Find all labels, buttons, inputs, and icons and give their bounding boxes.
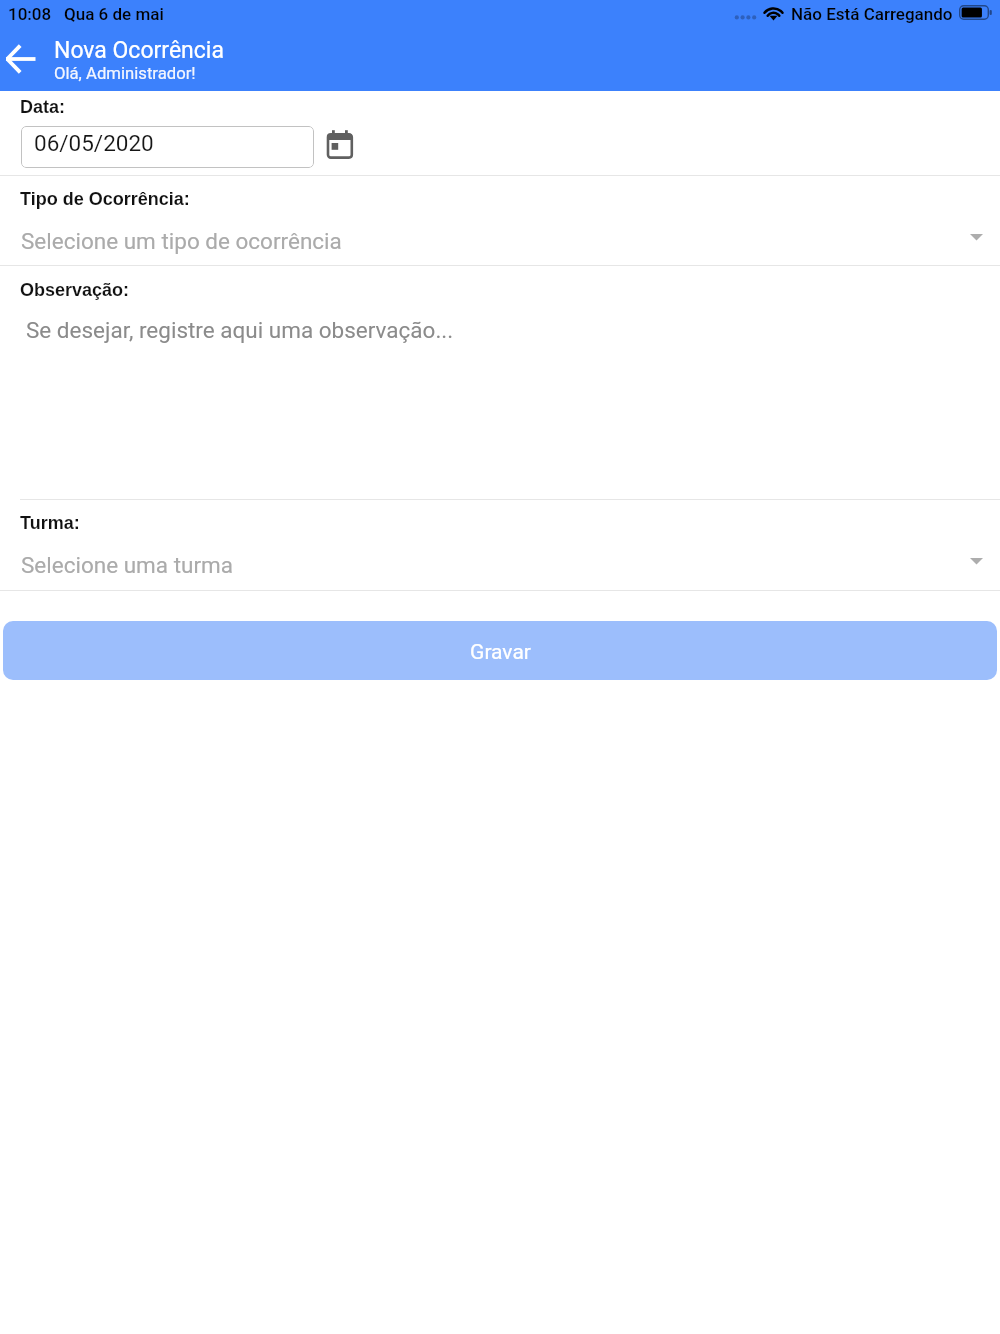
staticText: Qua 6 de mai	[64, 4, 164, 24]
button[interactable]: Selecione um tipo de ocorrência	[0, 222, 1000, 260]
staticText: Nova Ocorrência	[54, 37, 224, 64]
staticText: 06/05/2020	[34, 130, 154, 156]
staticText: Gravar	[470, 640, 531, 665]
button[interactable]: Selecione uma turma	[0, 546, 1000, 584]
button[interactable]: Se desejar, registre aqui uma observação…	[0, 305, 1000, 499]
staticText: Selecione uma turma	[21, 552, 234, 578]
staticText: Turma:	[20, 513, 80, 533]
button[interactable]: Voltar	[0, 28, 52, 91]
staticText: 10:08	[8, 4, 52, 24]
staticText: Observação:	[20, 280, 130, 300]
staticText: Tipo de Ocorrência:	[20, 189, 190, 209]
button[interactable]: Escolher data	[318, 125, 362, 169]
staticText: Se desejar, registre aqui uma observação…	[26, 317, 454, 343]
button[interactable]: Gravar	[3, 621, 997, 680]
staticText: Não Está Carregando	[791, 4, 953, 24]
staticText: Data:	[20, 97, 66, 117]
staticText: Olá, Administrador!	[54, 64, 196, 84]
button[interactable]: 06/05/2020	[21, 126, 314, 168]
staticText: Selecione um tipo de ocorrência	[21, 228, 342, 254]
